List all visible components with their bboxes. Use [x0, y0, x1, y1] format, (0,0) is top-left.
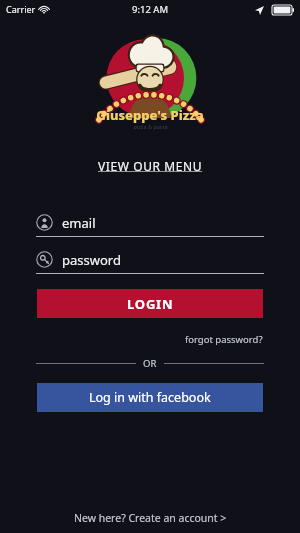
staticText: Giuseppe's Pizza	[96, 106, 204, 124]
staticText: VIEW OUR MENU	[98, 158, 203, 174]
staticText: email	[62, 214, 96, 232]
staticText: pizza & pasta	[133, 123, 168, 130]
staticText: forgot password?	[185, 333, 263, 346]
staticText: OR	[143, 357, 157, 370]
staticText: 9:12 AM	[132, 3, 169, 16]
staticText: password	[62, 251, 121, 269]
button[interactable]: New here? Create an account >	[64, 508, 237, 528]
button[interactable]: LOGIN	[37, 289, 263, 318]
staticText: Log in with facebook	[89, 389, 211, 406]
staticText: Carrier	[6, 3, 36, 15]
staticText: New here? Create an account >	[74, 511, 227, 525]
button[interactable]: password	[36, 246, 264, 274]
button[interactable]: Log in with facebook	[37, 383, 263, 412]
button[interactable]: forgot password?	[181, 331, 267, 348]
button[interactable]: email	[36, 209, 264, 237]
other: Giuseppe's Pizza logo	[80, 30, 220, 140]
button[interactable]: VIEW OUR MENU	[88, 155, 213, 177]
staticText: LOGIN	[127, 295, 174, 313]
